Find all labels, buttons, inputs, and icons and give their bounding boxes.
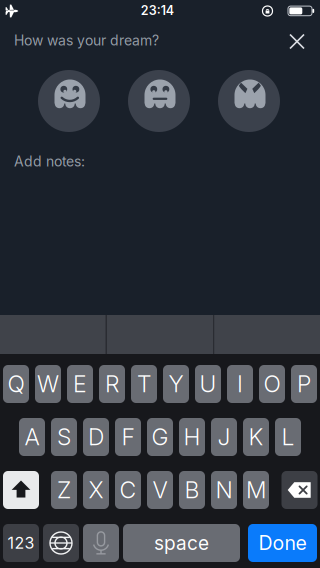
button[interactable]: P — [291, 365, 317, 403]
button[interactable] — [83, 524, 119, 562]
button[interactable] — [38, 70, 100, 132]
button[interactable]: G — [147, 418, 173, 456]
staticText: C — [119, 476, 136, 504]
staticText: I — [237, 370, 243, 398]
button[interactable] — [43, 524, 79, 562]
staticText: Add notes: — [14, 153, 85, 170]
button[interactable]: O — [259, 365, 285, 403]
button[interactable]: W — [35, 365, 61, 403]
staticText: Y — [168, 370, 183, 398]
button[interactable]: X — [83, 471, 109, 509]
button[interactable]: K — [243, 418, 269, 456]
staticText: A — [24, 423, 39, 451]
staticText: Z — [57, 476, 71, 504]
button[interactable] — [3, 471, 39, 509]
staticText: W — [37, 370, 59, 398]
staticText: F — [121, 423, 134, 451]
staticText: K — [248, 423, 263, 451]
staticText: B — [184, 476, 199, 504]
button[interactable]: Done — [248, 524, 317, 562]
button[interactable]: C — [115, 471, 141, 509]
button[interactable]: D — [83, 418, 109, 456]
button[interactable]: M — [243, 471, 269, 509]
staticText: O — [263, 370, 280, 398]
staticText: space — [154, 531, 209, 554]
button[interactable] — [128, 70, 190, 132]
staticText: L — [281, 423, 294, 451]
button[interactable]: Z — [51, 471, 77, 509]
staticText: Done — [258, 531, 306, 555]
staticText: D — [88, 423, 104, 451]
button[interactable] — [218, 70, 280, 132]
button[interactable]: A — [19, 418, 45, 456]
button[interactable]: N — [211, 471, 237, 509]
button[interactable]: E — [67, 365, 93, 403]
button[interactable]: L — [275, 418, 301, 456]
staticText: 23:14 — [141, 3, 174, 18]
button[interactable]: U — [195, 365, 221, 403]
staticText: How was your dream? — [14, 32, 159, 49]
staticText: E — [73, 370, 87, 398]
button[interactable]: F — [115, 418, 141, 456]
staticText: N — [215, 476, 232, 504]
button[interactable] — [281, 471, 317, 509]
button[interactable]: J — [211, 418, 237, 456]
staticText: Q — [7, 370, 24, 398]
staticText: G — [151, 423, 168, 451]
staticText: H — [183, 423, 200, 451]
staticText: X — [88, 476, 103, 504]
staticText: M — [246, 476, 266, 504]
button[interactable]: V — [147, 471, 173, 509]
staticText: T — [137, 370, 151, 398]
button[interactable]: 123 — [3, 524, 39, 562]
staticText: S — [57, 423, 71, 451]
staticText: R — [105, 370, 119, 398]
button[interactable]: H — [179, 418, 205, 456]
staticText: P — [297, 370, 311, 398]
staticText: U — [199, 370, 216, 398]
staticText: 123 — [7, 533, 34, 553]
button[interactable]: space — [123, 524, 240, 562]
button[interactable]: I — [227, 365, 253, 403]
button[interactable] — [286, 30, 308, 52]
button[interactable]: T — [131, 365, 157, 403]
staticText: J — [217, 423, 230, 451]
button[interactable]: S — [51, 418, 77, 456]
button[interactable]: Q — [3, 365, 29, 403]
button[interactable]: B — [179, 471, 205, 509]
button[interactable]: R — [99, 365, 125, 403]
staticText: V — [152, 476, 167, 504]
button[interactable]: Y — [163, 365, 189, 403]
